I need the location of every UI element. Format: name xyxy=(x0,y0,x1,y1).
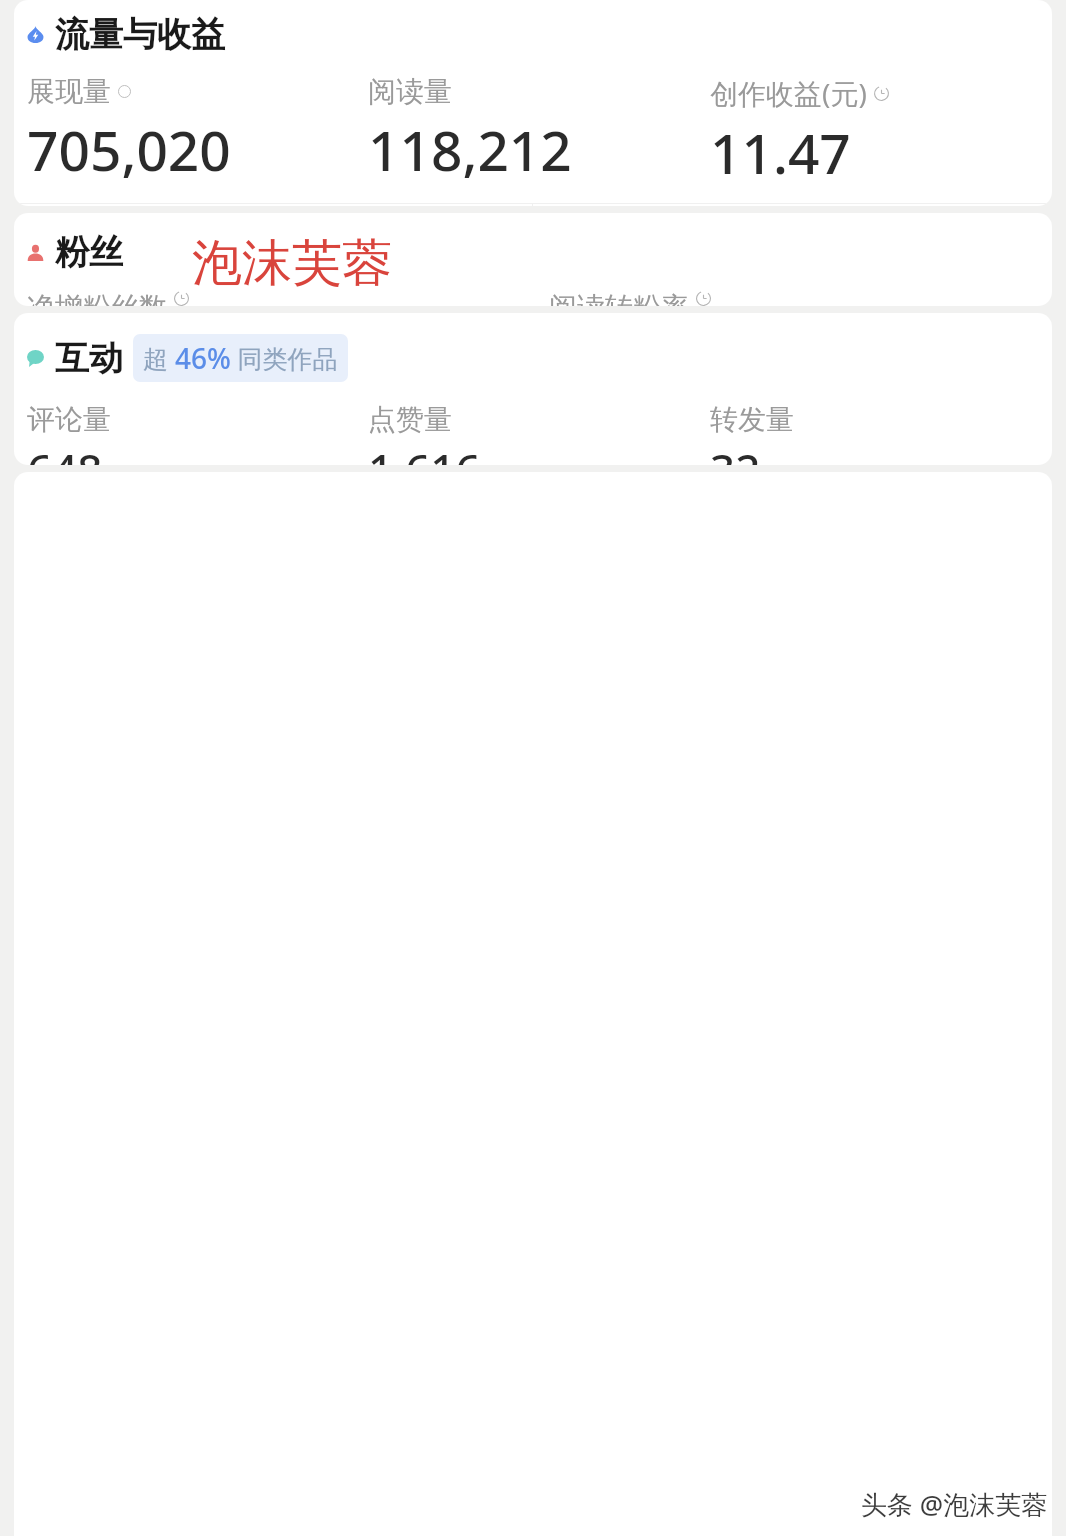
staticText: 点赞量 xyxy=(368,402,452,437)
staticText: 净增粉丝数 xyxy=(27,290,167,306)
staticText: 648 xyxy=(27,439,103,465)
staticText: 流量与收益 xyxy=(55,13,225,56)
button[interactable]: 粉丝 xyxy=(14,213,1052,306)
staticText: 创作收益(元) xyxy=(710,74,867,112)
staticText: 转发量 xyxy=(710,402,794,437)
staticText: 展现量 xyxy=(27,74,111,109)
staticText: 评论量 xyxy=(27,402,111,437)
staticText: 头条 @泡沫芙蓉 xyxy=(861,1486,1048,1522)
staticText: 11.47 xyxy=(710,115,851,190)
staticText: 705,020 xyxy=(27,112,231,187)
staticText: 1,616 xyxy=(368,439,481,465)
button[interactable]: 流量与收益 xyxy=(14,0,1052,206)
button[interactable]: 互动 xyxy=(14,313,1052,465)
staticText: 同类作品 xyxy=(231,341,338,375)
button[interactable]: 超 xyxy=(133,334,348,382)
staticText: 超 xyxy=(143,341,175,375)
staticText: 118,212 xyxy=(368,112,572,187)
staticText: 32 xyxy=(710,439,761,465)
staticText: 互动 xyxy=(55,337,123,380)
staticText: 46% xyxy=(175,339,231,377)
staticText: 泡沫芙蓉 xyxy=(192,232,392,295)
staticText: 阅读转粉率 xyxy=(549,290,689,306)
staticText: 粉丝 xyxy=(55,231,123,274)
staticText: 阅读量 xyxy=(368,74,452,109)
